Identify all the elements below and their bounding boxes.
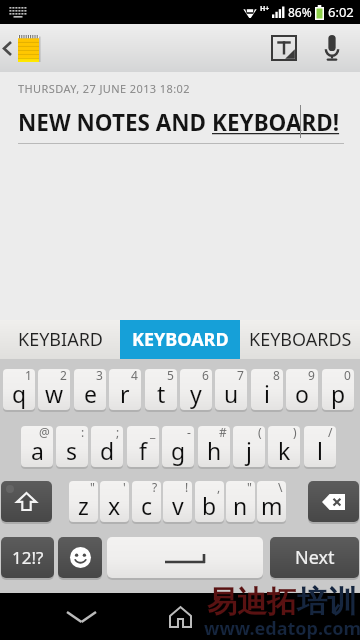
- staticText: f: [139, 435, 147, 466]
- button[interactable]: m: [257, 481, 286, 522]
- staticText: e: [84, 378, 97, 409]
- staticText: y: [190, 378, 202, 409]
- button[interactable]: g: [162, 426, 194, 467]
- button[interactable]: p: [322, 369, 354, 410]
- button[interactable]: n: [226, 481, 255, 522]
- staticText: d: [100, 435, 115, 466]
- button[interactable]: [58, 537, 102, 578]
- button[interactable]: Hide keyboard: [56, 593, 106, 640]
- staticText: #: [219, 426, 227, 440]
- staticText: NEW NOTES AND: [18, 107, 212, 138]
- staticText: ;: [116, 426, 120, 440]
- button[interactable]: Voice input: [308, 24, 356, 72]
- staticText: o: [295, 378, 309, 409]
- staticText: H+: [260, 4, 270, 14]
- button[interactable]: Next: [270, 537, 359, 578]
- button[interactable]: 12!?: [1, 537, 54, 578]
- button[interactable]: j: [233, 426, 265, 467]
- staticText: -: [187, 426, 191, 440]
- staticText: 6: [202, 369, 209, 383]
- staticText: b: [202, 490, 217, 521]
- staticText: l: [317, 435, 323, 466]
- staticText: z: [78, 490, 89, 521]
- staticText: 86%: [288, 4, 312, 20]
- staticText: p: [331, 378, 346, 409]
- staticText: 1: [25, 369, 32, 383]
- button[interactable]: q: [3, 369, 35, 410]
- staticText: THURSDAY, 27 JUNE 2013 18:02: [18, 81, 190, 96]
- button[interactable]: KEYBIARD: [0, 320, 120, 359]
- button[interactable]: b: [195, 481, 224, 522]
- staticText: (: [258, 426, 262, 440]
- staticText: x: [108, 490, 121, 521]
- staticText: 5: [167, 369, 174, 383]
- button[interactable]: z: [69, 481, 98, 522]
- button[interactable]: Back: [0, 24, 39, 72]
- staticText: KEYBOARD!: [212, 107, 340, 138]
- button[interactable]: [308, 481, 359, 522]
- button[interactable]: KEYBOARDS: [240, 320, 360, 359]
- staticText: ): [293, 426, 297, 440]
- staticText: i: [264, 378, 270, 409]
- staticText: m: [261, 490, 283, 521]
- staticText: !: [185, 481, 189, 495]
- button[interactable]: w: [38, 369, 70, 410]
- staticText: Next: [295, 545, 335, 570]
- button[interactable]: Text formatting: [260, 24, 308, 72]
- staticText: k: [278, 435, 291, 466]
- staticText: 培训: [297, 583, 357, 621]
- staticText: www.edatop.com: [204, 616, 360, 640]
- staticText: 6:02: [328, 3, 354, 21]
- button[interactable]: f: [127, 426, 159, 467]
- button[interactable]: v: [163, 481, 192, 522]
- staticText: c: [141, 490, 153, 521]
- staticText: @: [39, 426, 50, 440]
- button[interactable]: r: [109, 369, 141, 410]
- staticText: KEYBOARD: [132, 327, 229, 352]
- button[interactable]: d: [91, 426, 123, 467]
- button[interactable]: x: [100, 481, 129, 522]
- button[interactable]: c: [132, 481, 161, 522]
- staticText: q: [12, 378, 27, 409]
- staticText: u: [224, 378, 239, 409]
- staticText: 4: [131, 369, 138, 383]
- staticText: 2: [60, 369, 67, 383]
- staticText: ": [247, 481, 252, 495]
- staticText: 7: [237, 369, 244, 383]
- staticText: h: [207, 435, 222, 466]
- staticText: 8: [273, 369, 280, 383]
- button[interactable]: y: [180, 369, 212, 410]
- button[interactable]: t: [145, 369, 177, 410]
- staticText: w: [45, 378, 64, 409]
- button[interactable]: k: [268, 426, 300, 467]
- button[interactable]: l: [304, 426, 336, 467]
- staticText: ,: [217, 481, 221, 495]
- staticText: ': [123, 481, 126, 495]
- staticText: a: [31, 435, 44, 466]
- staticText: KEYBOARDS: [249, 327, 352, 352]
- button[interactable]: i: [251, 369, 283, 410]
- button[interactable]: [1, 481, 52, 522]
- staticText: :: [81, 426, 85, 440]
- staticText: 12!?: [12, 546, 44, 569]
- staticText: 9: [308, 369, 315, 383]
- staticText: t: [157, 378, 166, 409]
- button[interactable]: KEYBOARD: [120, 320, 240, 359]
- button[interactable]: e: [74, 369, 106, 410]
- staticText: j: [246, 435, 252, 466]
- staticText: n: [233, 490, 248, 521]
- button[interactable]: o: [286, 369, 318, 410]
- button[interactable]: s: [56, 426, 88, 467]
- button[interactable]: h: [198, 426, 230, 467]
- staticText: g: [171, 435, 186, 466]
- button[interactable]: u: [215, 369, 247, 410]
- staticText: /: [328, 426, 333, 440]
- staticText: 0: [344, 369, 351, 383]
- staticText: ": [90, 481, 95, 495]
- staticText: _: [150, 426, 156, 440]
- button[interactable]: Home: [155, 593, 205, 640]
- staticText: \: [278, 481, 283, 495]
- button[interactable]: Space: [107, 537, 263, 578]
- staticText: 易迪拓: [207, 583, 297, 621]
- button[interactable]: a: [21, 426, 53, 467]
